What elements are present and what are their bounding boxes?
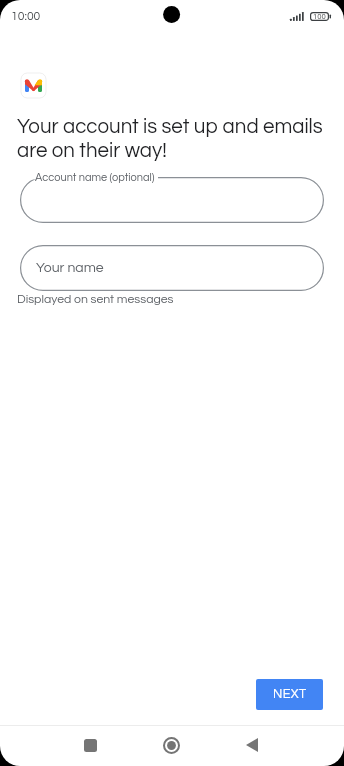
staticText: 10:00 [11,10,41,23]
button[interactable]: NEXT [256,679,323,710]
button[interactable]: Account name (optional) [20,177,324,223]
staticText: Your account is set up and emails are on… [17,116,330,161]
staticText: 100 [313,11,326,21]
button[interactable]: Your name [20,245,324,291]
staticText: Account name (optional) [35,172,155,183]
button[interactable]: Recent apps [66,725,114,765]
button[interactable]: Back [228,725,276,765]
staticText: Displayed on sent messages [17,293,174,306]
button[interactable]: Home [147,725,195,765]
staticText: NEXT [273,688,307,701]
staticText: Your name [36,261,104,275]
